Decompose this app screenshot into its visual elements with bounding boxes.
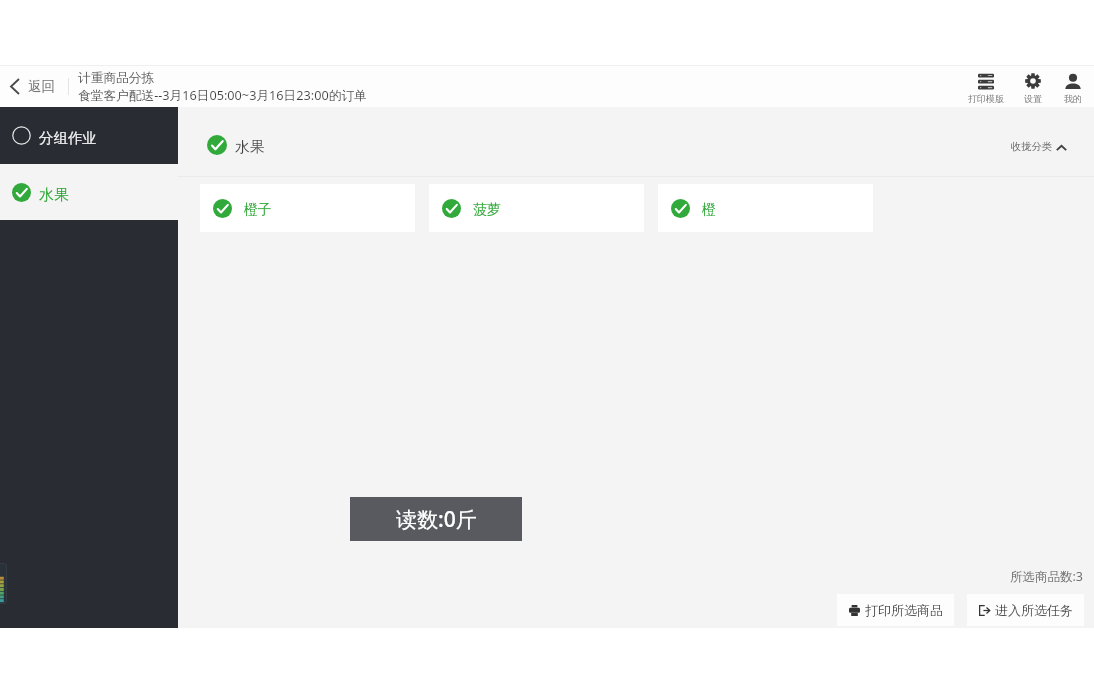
button[interactable]: 橙 [658, 184, 873, 232]
staticText: 菠萝 [473, 201, 501, 218]
staticText: 水果 [235, 138, 265, 157]
button[interactable]: 返回 [4, 65, 65, 107]
button[interactable]: 菠萝 [429, 184, 644, 232]
staticText: 打印所选商品 [865, 602, 943, 618]
staticText: 返回 [28, 78, 55, 95]
button[interactable]: 设置 [1012, 65, 1054, 107]
staticText: 分组作业 [39, 129, 97, 147]
button[interactable]: 打印模版 [964, 65, 1008, 107]
staticText: 水果 [39, 186, 69, 205]
staticText: 进入所选任务 [995, 602, 1073, 618]
staticText: 我的 [1064, 93, 1082, 104]
button[interactable]: 我的 [1054, 65, 1091, 107]
button[interactable]: 分组作业 [0, 107, 178, 164]
staticText: 食堂客户配送--3月16日05:00~3月16日23:00的订单 [78, 86, 367, 103]
staticText: 橙子 [244, 201, 272, 218]
staticText: 打印模版 [968, 93, 1004, 104]
staticText: 所选商品数:3 [1010, 568, 1084, 585]
staticText: 收拢分类 [1011, 140, 1053, 153]
button[interactable]: 打印所选商品 [837, 594, 954, 626]
staticText: 橙 [702, 201, 716, 218]
staticText: 设置 [1024, 93, 1042, 104]
staticText: 计重商品分拣 [78, 70, 155, 86]
button[interactable]: 橙子 [200, 184, 415, 232]
button[interactable]: 水果 [0, 164, 178, 220]
button[interactable]: 进入所选任务 [967, 594, 1084, 626]
button[interactable]: 收拢分类 [1005, 131, 1073, 159]
button[interactable]: 水果 [178, 128, 1094, 162]
staticText: 读数:0斤 [396, 505, 477, 534]
